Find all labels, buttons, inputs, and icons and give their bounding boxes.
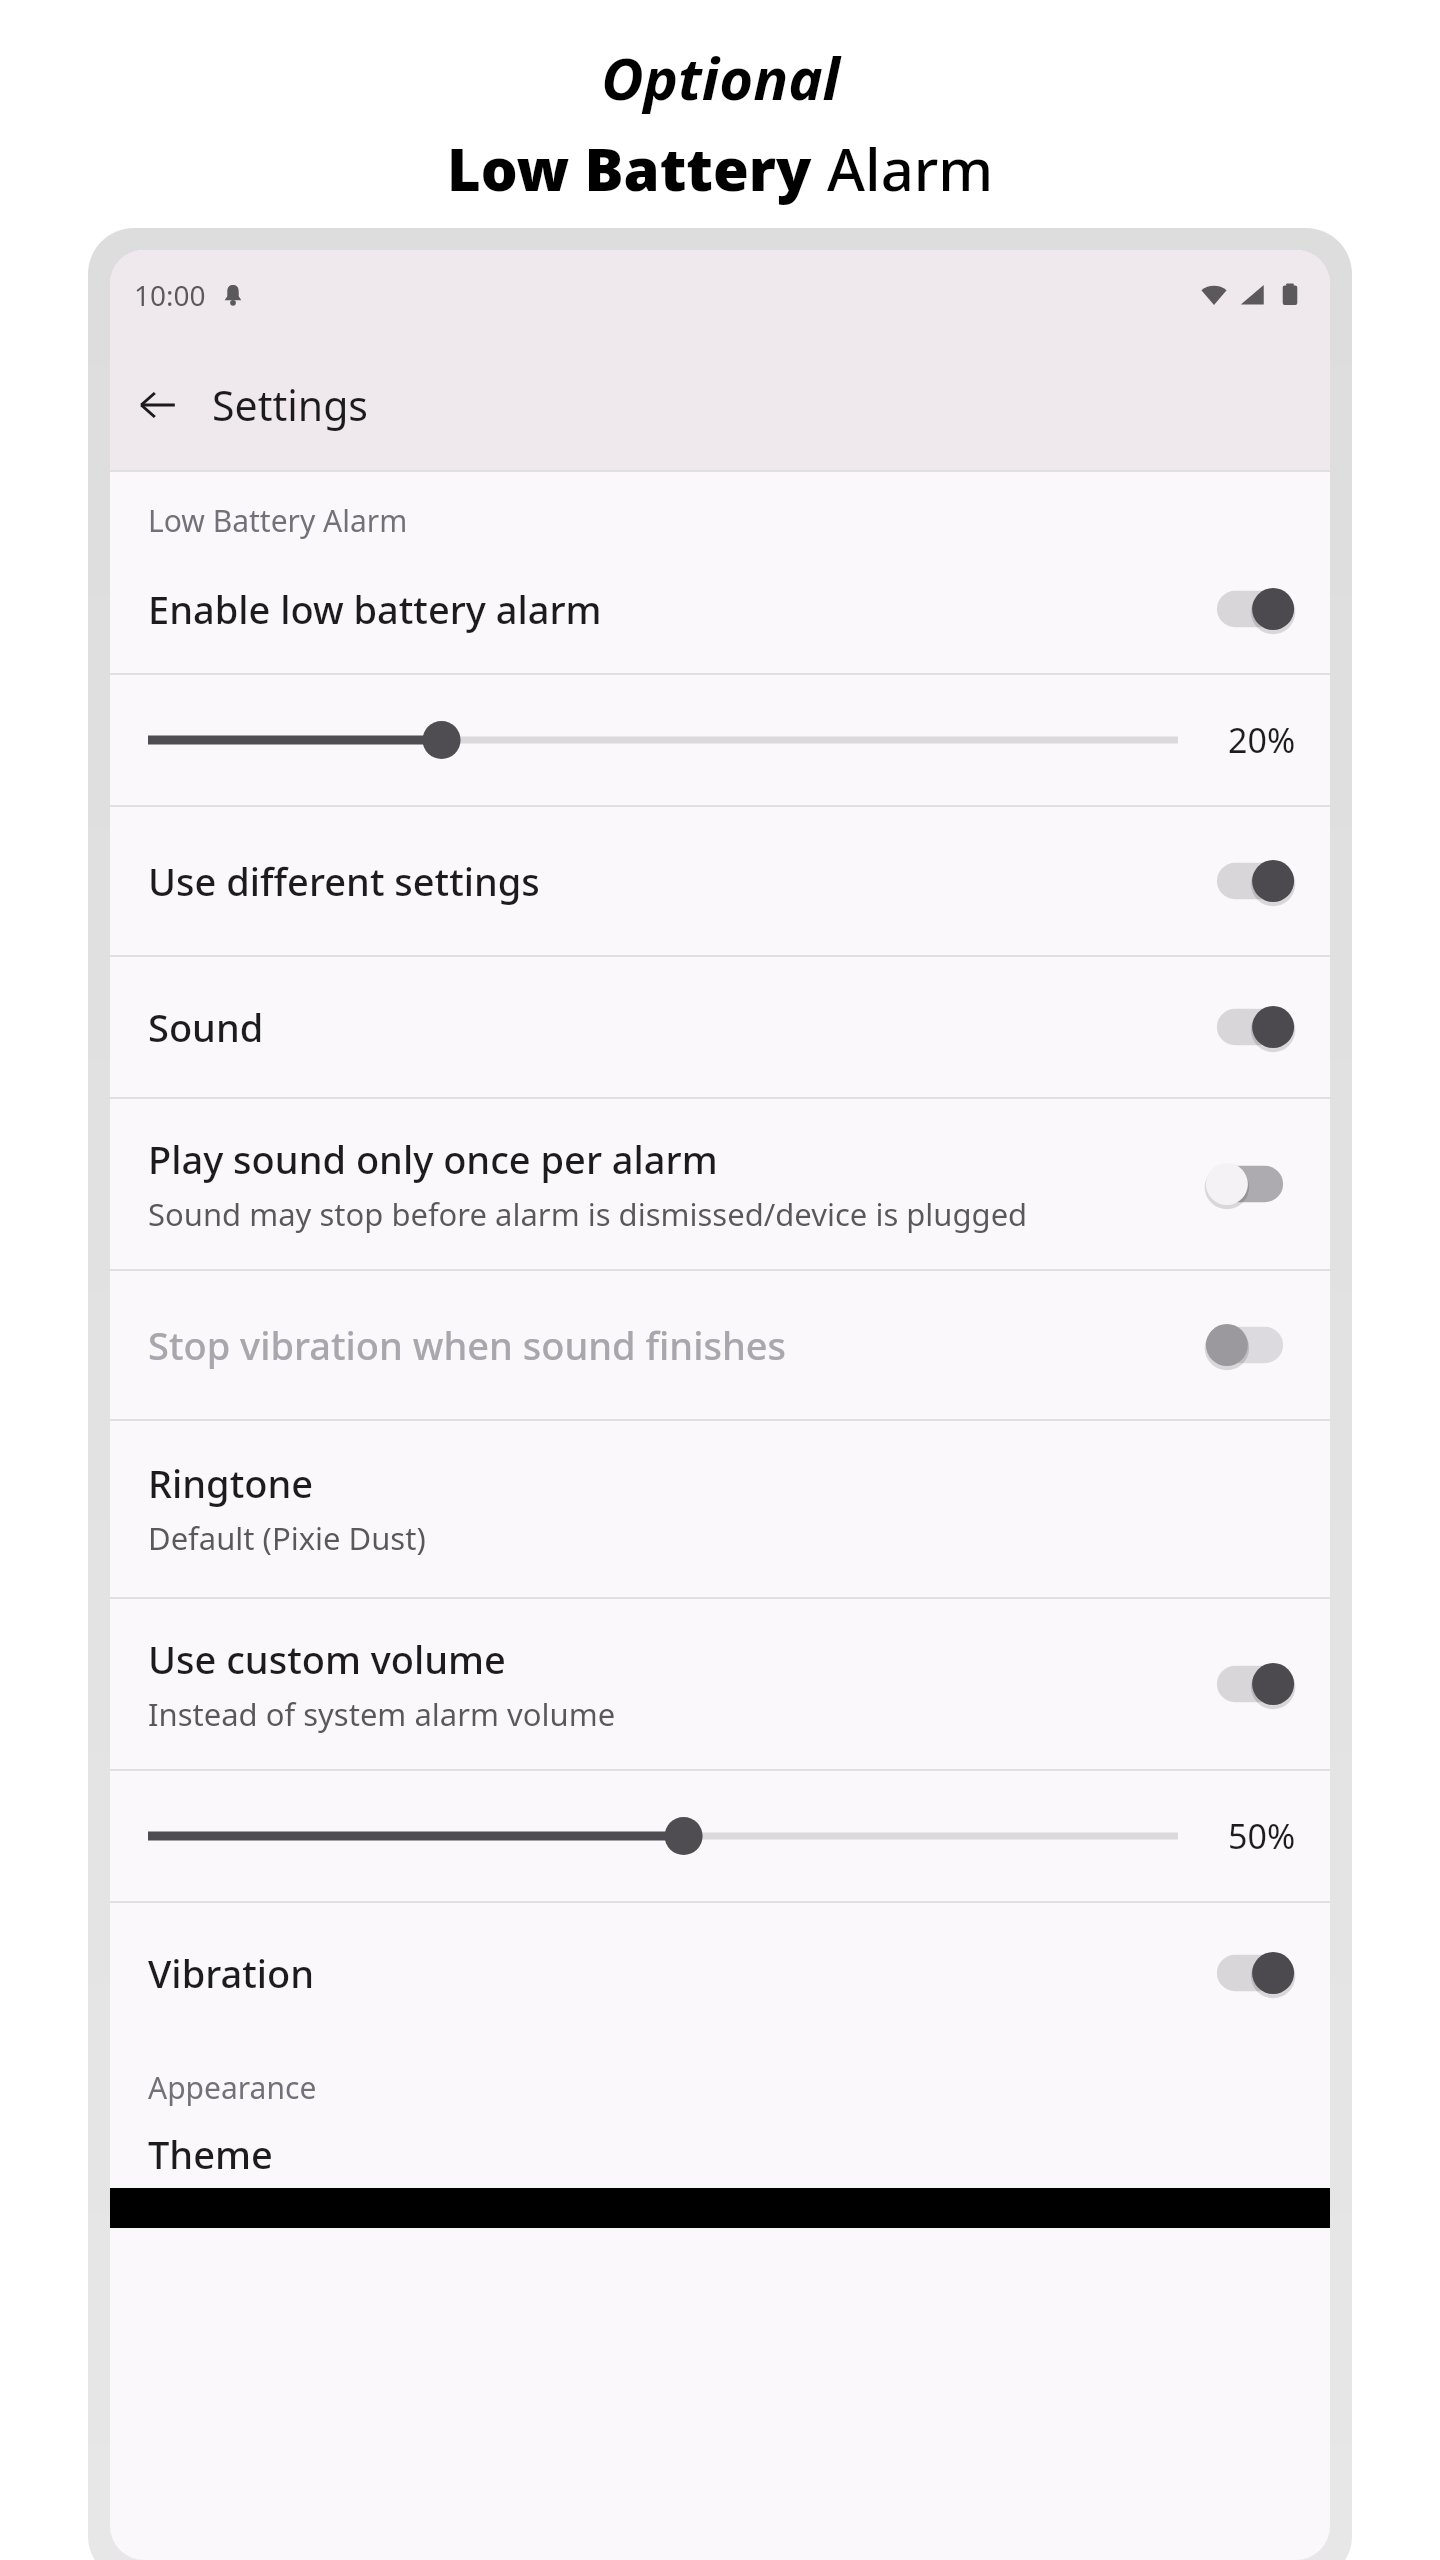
staticText: Low Battery Alarm [148, 500, 408, 541]
button[interactable]: Use custom volume [110, 1599, 1330, 1769]
button[interactable]: Back [120, 367, 196, 443]
staticText: Stop vibration when sound finishes [148, 1319, 786, 1371]
staticText: 20% [1228, 717, 1296, 763]
button[interactable]: Use different settings [110, 807, 1330, 955]
staticText: Use different settings [148, 855, 540, 907]
staticText: Vibration [148, 1947, 315, 1999]
button[interactable]: 20% [110, 675, 1330, 805]
button[interactable]: Vibration [110, 1903, 1330, 2043]
staticText: Use custom volume [148, 1633, 506, 1685]
staticText: Play sound only once per alarm [148, 1133, 718, 1185]
staticText: Low Battery [447, 129, 827, 208]
staticText: Instead of system alarm volume [148, 1693, 616, 1735]
button[interactable]: 50% [110, 1771, 1330, 1901]
staticText: Default (Pixie Dust) [148, 1517, 426, 1559]
staticText: Theme [148, 2128, 273, 2180]
staticText: Appearance [148, 2067, 317, 2108]
button[interactable]: Ringtone [110, 1421, 1330, 1597]
staticText: 10:00 [134, 276, 206, 314]
staticText: Sound [148, 1001, 264, 1053]
staticText: Alarm [827, 129, 994, 208]
staticText: 50% [1228, 1813, 1296, 1859]
staticText: Enable low battery alarm [148, 583, 602, 635]
staticText: Ringtone [148, 1457, 314, 1509]
button[interactable]: Stop vibration when sound finishes [110, 1271, 1330, 1419]
button[interactable]: Sound [110, 957, 1330, 1097]
button[interactable]: Enable low battery alarm [110, 545, 1330, 673]
staticText: Optional [601, 38, 840, 117]
button[interactable]: Theme [110, 2118, 1330, 2188]
button[interactable]: Play sound only once per alarm [110, 1099, 1330, 1269]
staticText: Settings [212, 377, 369, 433]
staticText: Sound may stop before alarm is dismissed… [148, 1193, 1028, 1235]
